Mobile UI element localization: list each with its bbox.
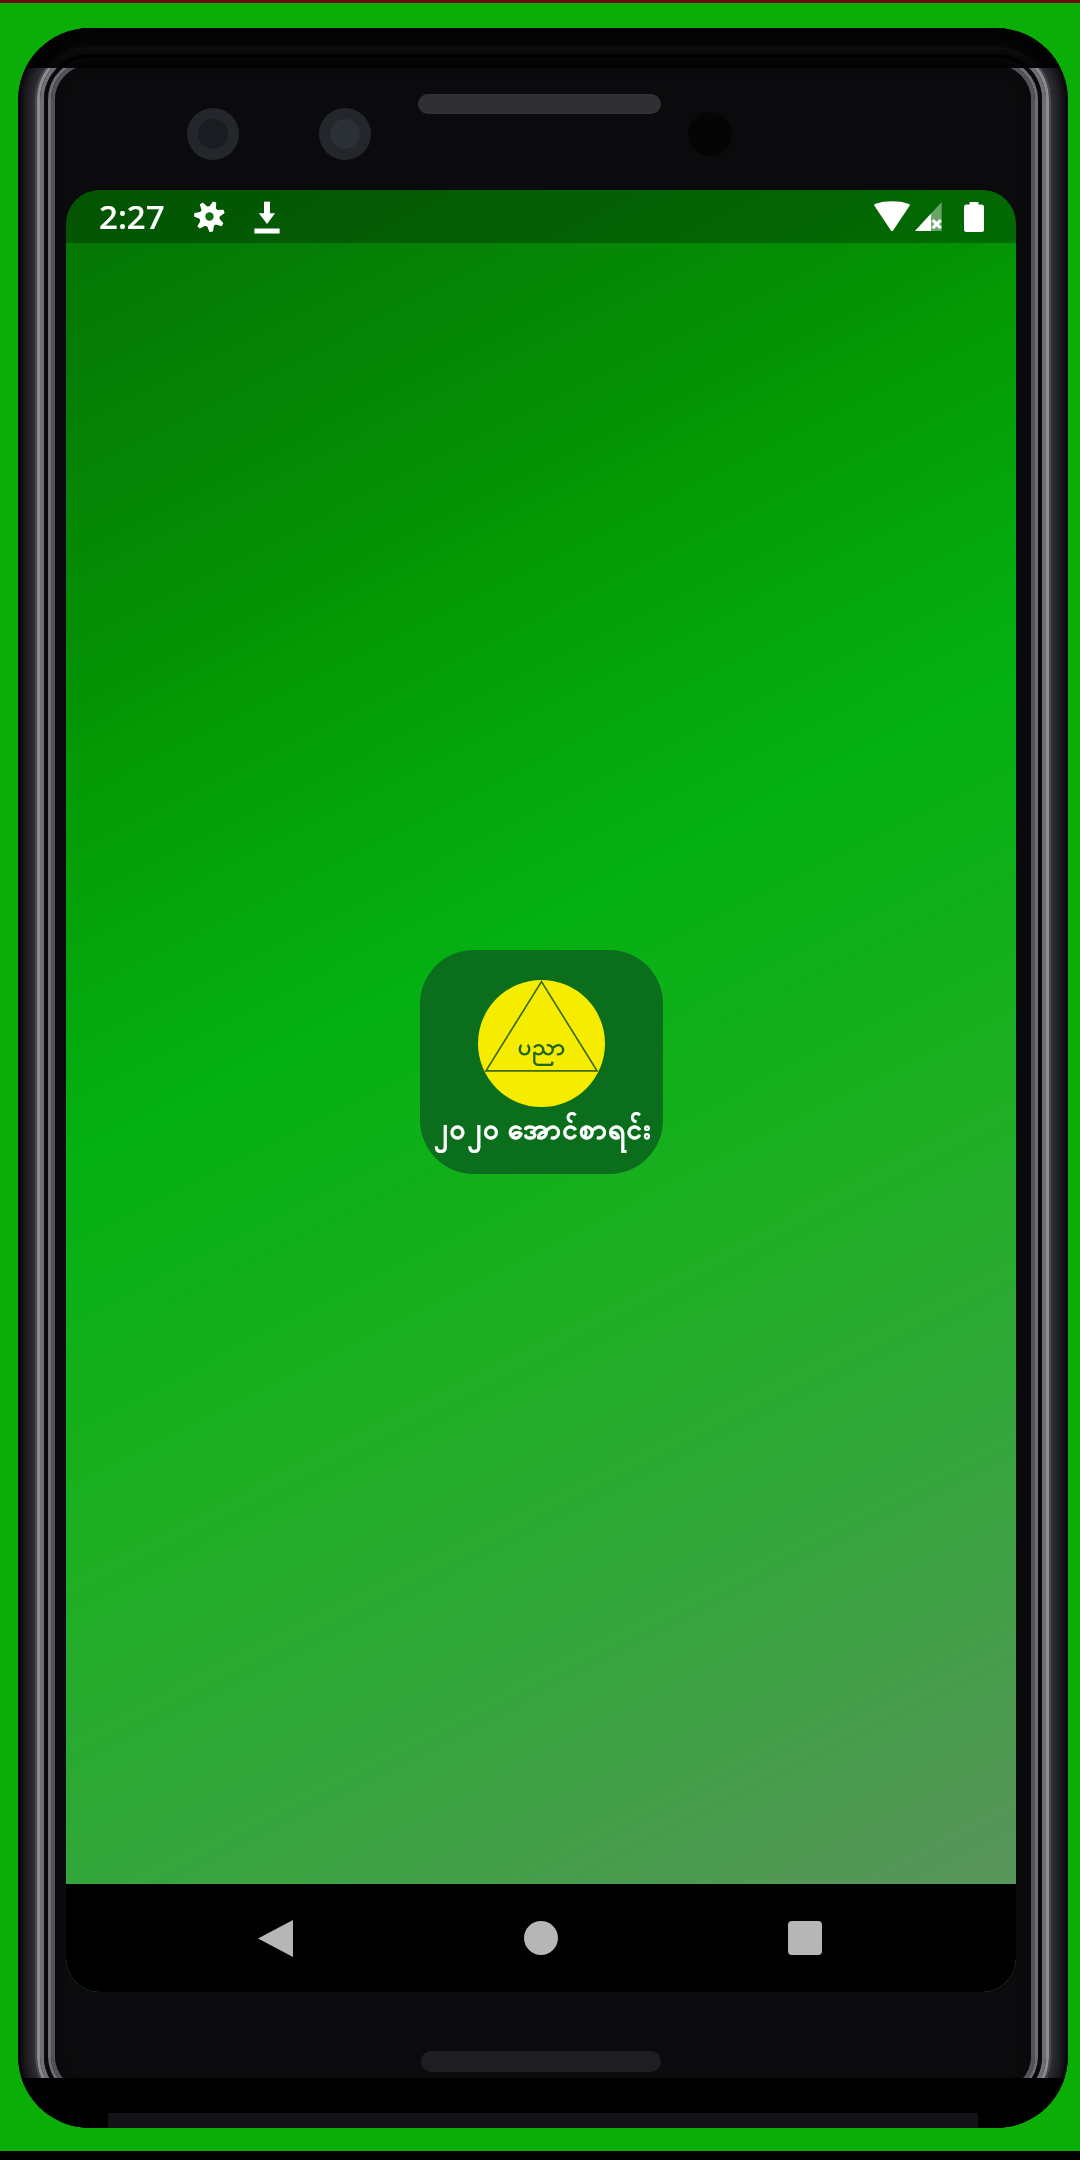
staticText: 2:27 — [99, 194, 165, 239]
button[interactable]: Back — [215, 1884, 335, 1992]
button[interactable]: Recents — [745, 1884, 865, 1992]
button[interactable]: ပညာ — [420, 950, 663, 1174]
button[interactable]: Home — [481, 1884, 601, 1992]
staticText: ၂၀၂၀ အောင်စာရင်း — [432, 1107, 652, 1153]
staticText: ပညာ — [517, 1030, 566, 1067]
